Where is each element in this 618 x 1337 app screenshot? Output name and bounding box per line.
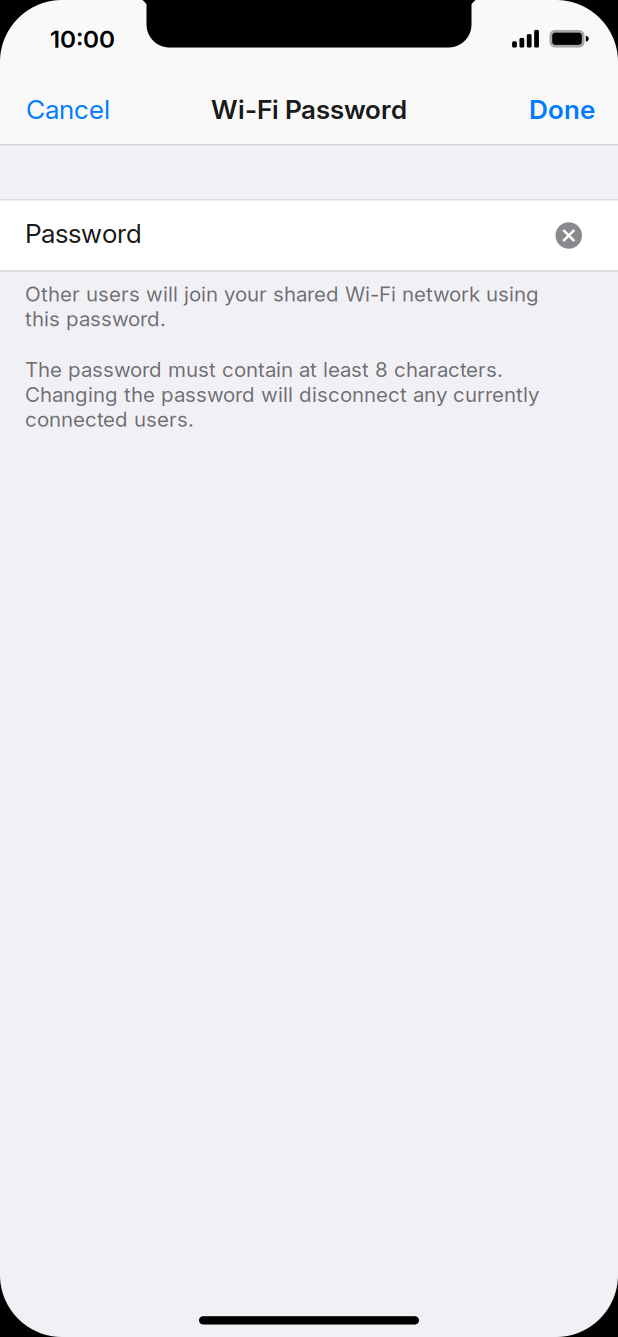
staticText: Password (25, 218, 142, 249)
staticText: Cancel (26, 94, 110, 125)
staticText: Done (529, 94, 595, 125)
staticText: Wi-Fi Password (211, 94, 407, 125)
button[interactable]: Cancel (0, 74, 124, 144)
staticText: Other users will join your shared Wi-Fi … (25, 281, 539, 331)
staticText: 10:00 (50, 24, 115, 53)
button[interactable]: Password (0, 200, 618, 270)
button[interactable]: Done (515, 74, 618, 144)
staticText: The password must contain at least 8 cha… (25, 357, 539, 432)
